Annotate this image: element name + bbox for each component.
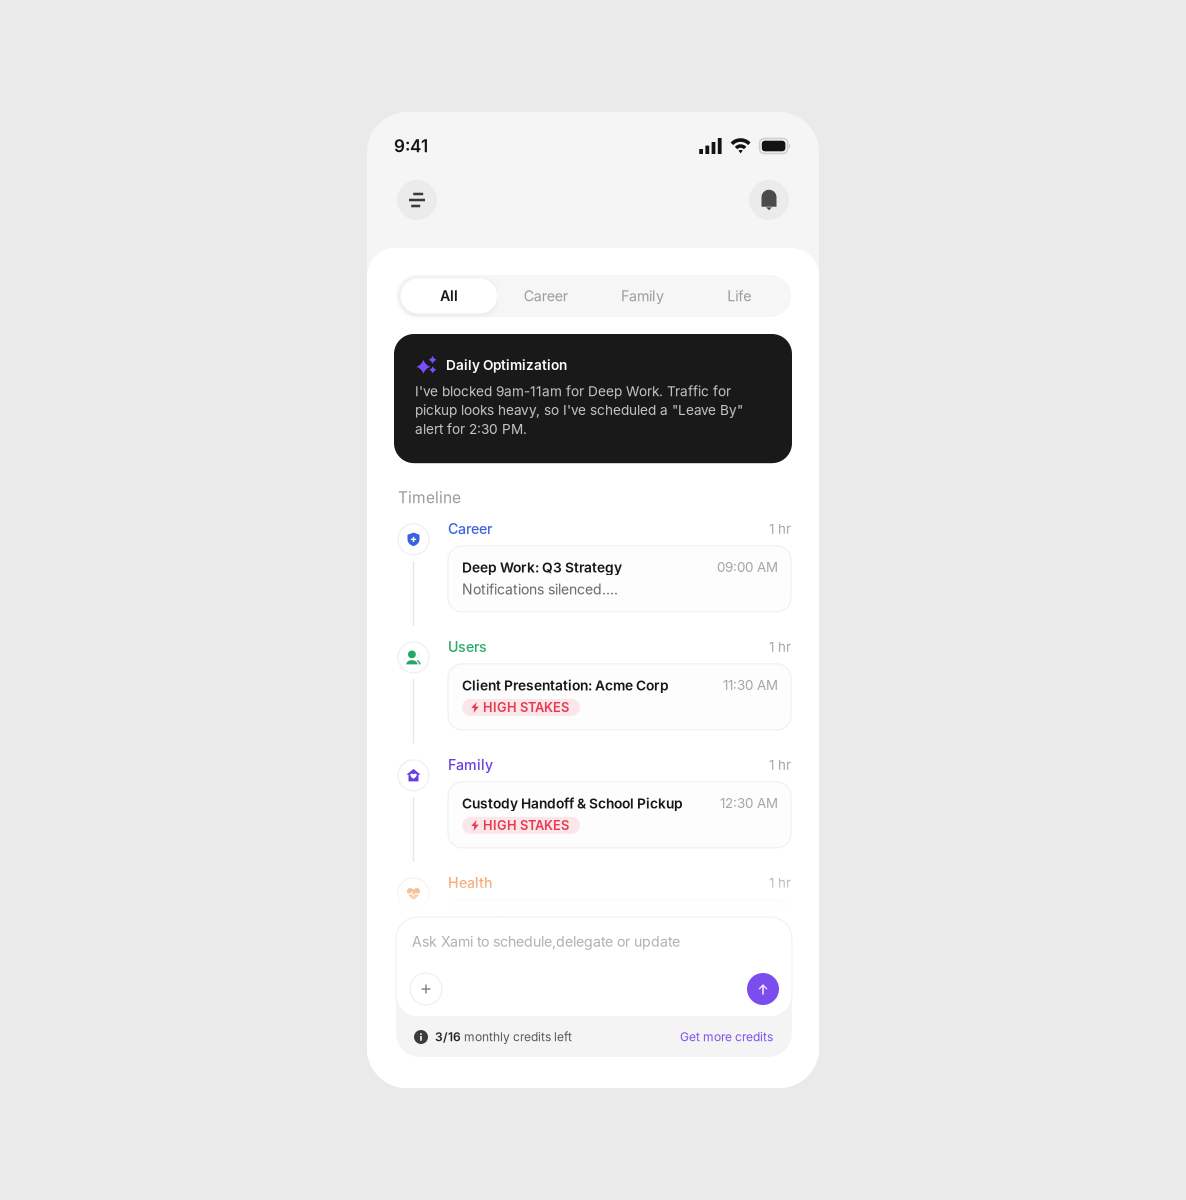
button[interactable]: Career <box>497 278 594 313</box>
staticText: Life <box>727 287 751 305</box>
staticText: Ask Xami to schedule,delegate or update <box>412 933 680 950</box>
staticText: HIGH STAKES <box>483 700 569 715</box>
staticText: 3/16 <box>435 1030 461 1044</box>
button[interactable]: All <box>400 278 497 313</box>
button[interactable]: Morning Workout <box>448 900 791 966</box>
button[interactable]: Deep Work: Q3 Strategy <box>448 546 791 612</box>
staticText: Career <box>448 520 492 537</box>
staticText: HIGH STAKES <box>483 818 569 833</box>
button[interactable]: Menu <box>397 180 437 220</box>
staticText: Notifications silenced.... <box>462 581 618 598</box>
staticText: Daily Optimization <box>446 357 567 373</box>
staticText: Career <box>524 287 568 305</box>
staticText: Get more credits <box>680 1030 773 1044</box>
staticText: 1 hr <box>769 521 791 537</box>
staticText: I've blocked 9am-11am for Deep Work. Tra… <box>415 383 743 437</box>
staticText: Family <box>448 756 493 773</box>
staticText: 12:30 AM <box>720 795 778 811</box>
staticText: 1 hr <box>769 875 791 891</box>
staticText: 1 hr <box>769 639 791 655</box>
staticText: Users <box>448 638 487 655</box>
button[interactable]: Family <box>594 278 691 313</box>
staticText: monthly credits left <box>461 1030 572 1044</box>
button[interactable]: Custody Handoff & School Pickup <box>448 782 791 848</box>
staticText: 11:30 AM <box>723 677 778 693</box>
button[interactable]: Client Presentation: Acme Corp <box>448 664 791 730</box>
staticText: 9:41 <box>394 136 428 156</box>
staticText: Family <box>621 287 664 305</box>
staticText: Deep Work: Q3 Strategy <box>462 559 622 576</box>
button[interactable]: Send <box>747 973 779 1005</box>
staticText: Timeline <box>398 488 461 507</box>
button[interactable]: Add attachment <box>410 973 442 1005</box>
button[interactable]: Get more credits <box>680 1030 773 1044</box>
staticText: Zone 2 cardio <box>462 935 553 952</box>
staticText: Client Presentation: Acme Corp <box>462 677 669 694</box>
staticText: 09:00 AM <box>717 559 778 575</box>
staticText: Health <box>448 874 493 891</box>
staticText: Custody Handoff & School Pickup <box>462 795 683 812</box>
button[interactable]: Life <box>691 278 788 313</box>
staticText: All <box>440 287 458 305</box>
button[interactable]: Notifications <box>749 180 789 220</box>
staticText: 1 hr <box>769 757 791 773</box>
